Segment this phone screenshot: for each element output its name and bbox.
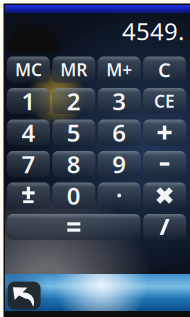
staticText: 3 (112, 85, 126, 117)
staticText: 6 (112, 117, 126, 148)
staticText: 4 (21, 117, 35, 148)
button[interactable]: 4 (7, 119, 50, 145)
staticText: MR (60, 58, 87, 81)
staticText: 4549. (122, 15, 184, 47)
button[interactable] (143, 151, 186, 177)
button[interactable]: 2 (52, 88, 95, 114)
staticText: 2 (67, 85, 81, 117)
staticText: 8 (67, 148, 81, 180)
button[interactable]: 7 (7, 151, 50, 177)
staticText: 5 (67, 117, 81, 148)
button[interactable]: Back (8, 282, 41, 310)
button[interactable]: CE (143, 88, 186, 114)
button[interactable]: 6 (98, 119, 141, 145)
button[interactable] (143, 119, 186, 145)
button[interactable]: 1 (7, 88, 50, 114)
staticText: M+ (106, 58, 132, 81)
staticText: CE (154, 89, 175, 112)
button[interactable] (7, 182, 50, 208)
button[interactable]: C (143, 56, 186, 82)
button[interactable]: MR (52, 56, 95, 82)
button[interactable]: M+ (98, 56, 141, 82)
button[interactable]: 9 (98, 151, 141, 177)
button[interactable] (7, 214, 141, 240)
button[interactable]: 0 (52, 182, 95, 208)
staticText: 0 (67, 180, 81, 211)
staticText: 7 (21, 148, 35, 180)
staticText: MC (15, 58, 42, 81)
button[interactable] (98, 182, 141, 208)
button[interactable] (143, 214, 186, 240)
button[interactable]: 5 (52, 119, 95, 145)
button[interactable]: 8 (52, 151, 95, 177)
staticText: 1 (21, 85, 35, 117)
staticText: 9 (112, 148, 126, 180)
button[interactable]: MC (7, 56, 50, 82)
staticText: C (158, 56, 171, 83)
button[interactable]: 3 (98, 88, 141, 114)
button[interactable] (143, 182, 186, 208)
